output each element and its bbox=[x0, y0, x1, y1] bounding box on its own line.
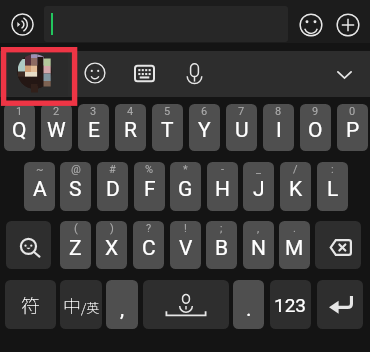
button[interactable]: / bbox=[280, 162, 311, 211]
button[interactable]: . bbox=[233, 280, 264, 329]
button[interactable]: 2 bbox=[41, 104, 72, 151]
staticText: 1 bbox=[16, 105, 23, 118]
button[interactable]: Backspace bbox=[315, 221, 361, 269]
button[interactable]: Emoji bbox=[299, 13, 323, 37]
staticText: R bbox=[124, 118, 137, 143]
staticText: ) bbox=[110, 222, 114, 235]
button[interactable]: Keyboard bbox=[134, 63, 155, 84]
button[interactable]: 0 bbox=[337, 104, 368, 151]
staticText: H bbox=[215, 177, 230, 202]
staticText: O bbox=[308, 118, 323, 143]
staticText: J bbox=[253, 177, 265, 202]
button[interactable]: : bbox=[317, 162, 348, 211]
button[interactable]: 8 bbox=[263, 104, 294, 151]
staticText: / bbox=[293, 163, 298, 176]
staticText: ( bbox=[74, 222, 78, 235]
staticText: S bbox=[69, 177, 82, 202]
staticText: A bbox=[33, 177, 47, 202]
button[interactable]: 6 bbox=[189, 104, 220, 151]
button[interactable]: 9 bbox=[300, 104, 331, 151]
staticText: ; bbox=[220, 222, 223, 235]
button[interactable]: 7 bbox=[226, 104, 257, 151]
button[interactable]: . bbox=[279, 221, 310, 269]
staticText: 9 bbox=[312, 105, 319, 118]
staticText: K bbox=[289, 177, 303, 202]
button[interactable]: ? bbox=[133, 221, 164, 269]
button[interactable]: % bbox=[134, 162, 165, 211]
staticText: 2 bbox=[53, 105, 60, 118]
staticText: ~ bbox=[36, 163, 44, 176]
staticText: 中 bbox=[63, 292, 81, 318]
staticText: # bbox=[109, 163, 116, 176]
staticText: * bbox=[183, 163, 188, 176]
button[interactable]: ) bbox=[96, 221, 127, 269]
staticText: I bbox=[276, 118, 282, 143]
button[interactable]: ~ bbox=[24, 162, 55, 211]
staticText: 8 bbox=[275, 105, 282, 118]
staticText: P bbox=[346, 118, 360, 143]
staticText: F bbox=[144, 177, 156, 202]
button[interactable]: 5 bbox=[152, 104, 183, 151]
button[interactable]: Voice input bbox=[11, 13, 34, 36]
staticText: % bbox=[145, 163, 154, 176]
button[interactable]: Add attachment bbox=[336, 13, 360, 37]
button[interactable]: Emoji search bbox=[6, 221, 51, 269]
staticText: C bbox=[142, 236, 156, 261]
staticText: M bbox=[285, 236, 304, 261]
staticText: _ bbox=[256, 163, 261, 176]
button[interactable]: Collapse panel bbox=[329, 61, 359, 91]
staticText: Y bbox=[198, 118, 211, 143]
button[interactable]: _ bbox=[243, 162, 274, 211]
button[interactable]: , bbox=[243, 221, 274, 269]
button[interactable]: Chinese / English bbox=[60, 280, 102, 329]
button[interactable]: 1 bbox=[4, 104, 35, 151]
staticText: 123 bbox=[274, 294, 307, 316]
staticText: : bbox=[331, 163, 334, 176]
staticText: 6 bbox=[201, 105, 208, 118]
button[interactable]: ; bbox=[206, 221, 237, 269]
staticText: /英 bbox=[81, 298, 100, 317]
button[interactable]: Voice message bbox=[184, 63, 205, 84]
button[interactable]: # bbox=[97, 162, 128, 211]
staticText: , bbox=[120, 297, 125, 322]
button[interactable]: Text input bbox=[44, 6, 288, 42]
staticText: 4 bbox=[127, 105, 134, 118]
staticText: V bbox=[179, 236, 193, 261]
staticText: , bbox=[257, 222, 260, 235]
staticText: D bbox=[106, 177, 120, 202]
button[interactable]: Space bbox=[143, 280, 229, 329]
staticText: . bbox=[246, 297, 252, 322]
button[interactable]: Stickers bbox=[84, 62, 106, 84]
button[interactable]: ! bbox=[170, 221, 201, 269]
staticText: 5 bbox=[164, 105, 171, 118]
staticText: U bbox=[235, 118, 249, 143]
staticText: . bbox=[293, 222, 296, 235]
staticText: Z bbox=[69, 236, 82, 261]
button[interactable]: * bbox=[170, 162, 201, 211]
staticText: L bbox=[327, 177, 339, 202]
button[interactable]: - bbox=[207, 162, 238, 211]
staticText: E bbox=[88, 118, 100, 143]
staticText: 符 bbox=[21, 291, 41, 319]
staticText: - bbox=[221, 163, 225, 176]
button[interactable]: Enter bbox=[317, 280, 363, 329]
button[interactable]: ( bbox=[60, 221, 91, 269]
staticText: X bbox=[105, 236, 119, 261]
button[interactable]: Numbers bbox=[270, 280, 311, 329]
button[interactable]: 3 bbox=[78, 104, 109, 151]
staticText: @ bbox=[71, 163, 81, 176]
staticText: ? bbox=[146, 222, 152, 235]
button[interactable]: , bbox=[106, 280, 138, 329]
staticText: N bbox=[251, 236, 266, 261]
staticText: 3 bbox=[90, 105, 97, 118]
staticText: Q bbox=[12, 118, 27, 143]
button[interactable]: Sticker preview bbox=[8, 52, 68, 96]
staticText: T bbox=[161, 118, 174, 143]
button[interactable]: Symbols bbox=[5, 280, 56, 329]
staticText: 7 bbox=[238, 105, 245, 118]
button[interactable]: 4 bbox=[115, 104, 146, 151]
staticText: B bbox=[215, 236, 229, 261]
staticText: G bbox=[178, 177, 193, 202]
button[interactable]: @ bbox=[60, 162, 91, 211]
staticText: 0 bbox=[349, 105, 356, 118]
